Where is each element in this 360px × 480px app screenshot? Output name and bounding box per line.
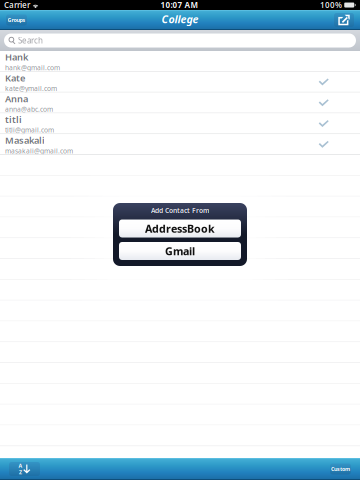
staticText: hank@gmail.com — [5, 63, 60, 72]
staticText: kate@ymail.com — [5, 84, 57, 93]
staticText: Hank — [5, 51, 28, 63]
button[interactable]: Kate — [0, 72, 360, 93]
staticText: Gmail — [165, 244, 195, 258]
staticText: Groups — [7, 16, 25, 24]
button[interactable]: Sort alphabetically — [9, 462, 40, 476]
staticText: Add Contact From — [151, 206, 209, 215]
staticText: Kate — [5, 72, 25, 84]
staticText: 10:07 AM — [160, 0, 198, 10]
button[interactable]: Hank — [0, 51, 360, 72]
staticText: College — [161, 12, 198, 26]
staticText: Masakali — [5, 134, 45, 146]
button[interactable]: Masakali — [0, 134, 360, 155]
button[interactable]: Anna — [0, 93, 360, 113]
staticText: Z — [19, 469, 22, 476]
staticText: titli@gmail.com — [5, 126, 54, 134]
button[interactable]: Custom — [330, 463, 351, 474]
staticText: Anna — [5, 92, 28, 105]
staticText: Search — [18, 35, 43, 46]
staticText: masakali@gmail.com — [5, 146, 73, 155]
staticText: Custom — [331, 465, 350, 473]
button[interactable]: titli — [0, 113, 360, 134]
staticText: A — [18, 462, 22, 469]
staticText: AddressBook — [145, 221, 215, 236]
button[interactable]: AddressBook — [119, 219, 241, 237]
button[interactable]: Gmail — [119, 242, 241, 260]
staticText: Carrier — [4, 0, 30, 10]
button[interactable]: Share — [334, 13, 354, 27]
staticText: titli — [5, 113, 22, 126]
button[interactable]: Groups — [6, 14, 27, 25]
staticText: anna@abc.com — [5, 105, 53, 114]
staticText: 100% — [320, 0, 342, 10]
